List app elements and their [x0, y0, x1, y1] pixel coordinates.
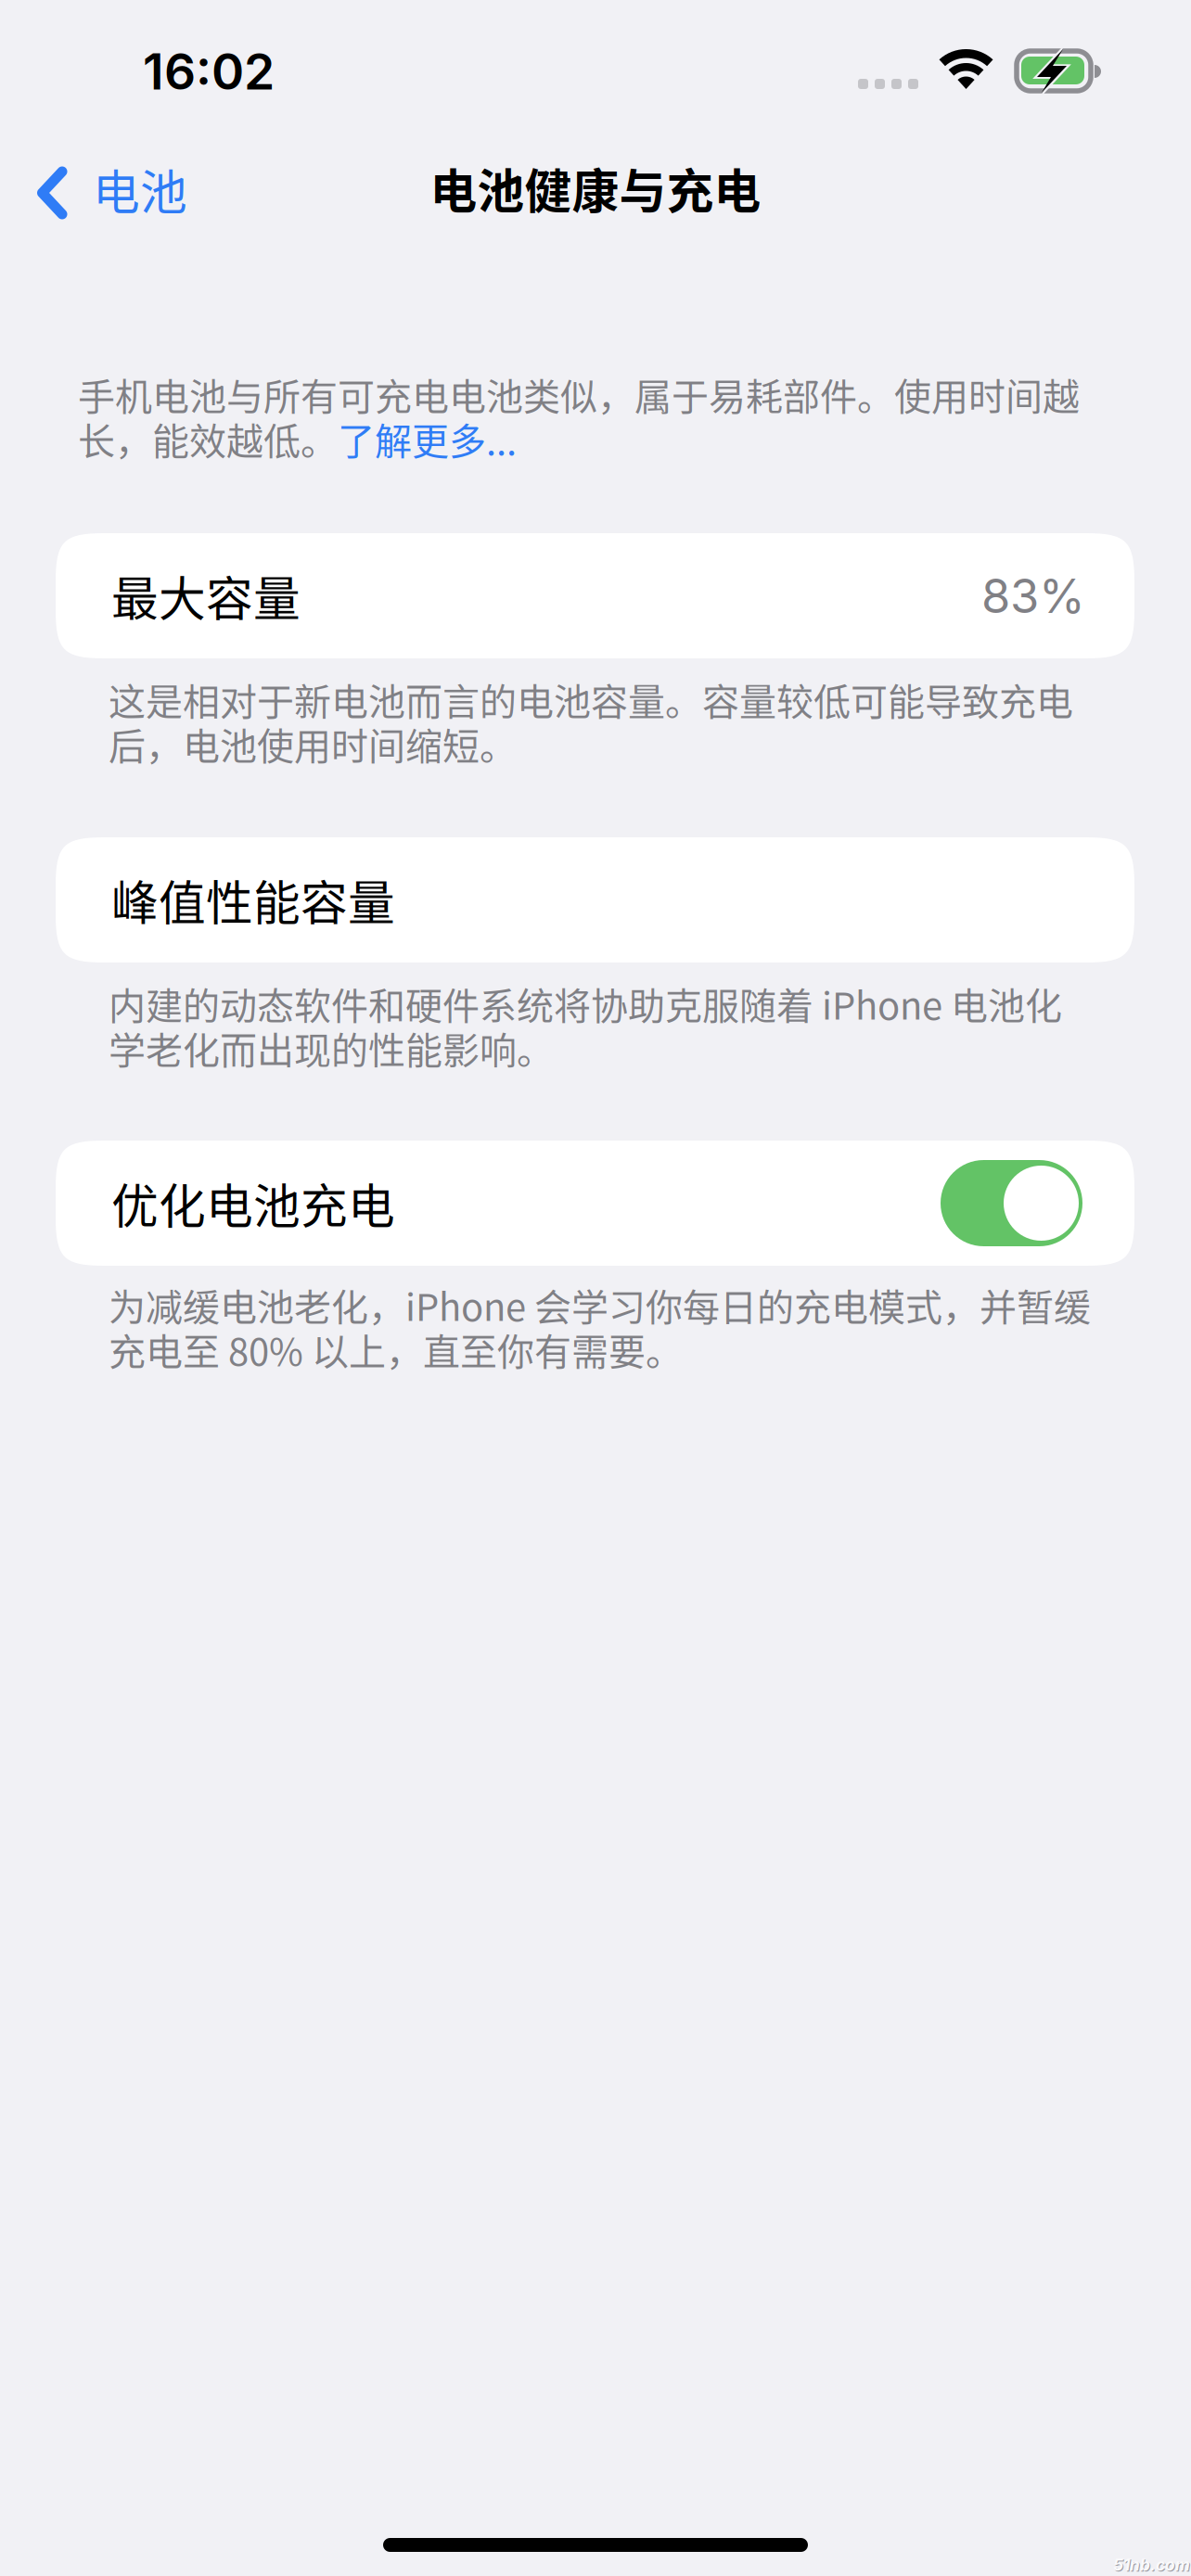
- staticText: 优化电池充电: [111, 1169, 395, 1237]
- button[interactable]: 电池: [0, 125, 232, 227]
- staticText: 长，能效越低。: [78, 412, 338, 465]
- staticText: 16:02: [143, 41, 275, 101]
- staticText: 为减缓电池老化，iPhone 会学习你每日的充电模式，并暂缓: [109, 1278, 1091, 1331]
- staticText: 最大容量: [111, 562, 301, 630]
- staticText: 电池健康与充电: [430, 154, 761, 222]
- button[interactable]: 了解更多...: [338, 412, 517, 465]
- staticText: 学老化而出现的性能影响。: [109, 1021, 554, 1075]
- staticText: 83%: [981, 567, 1085, 624]
- staticText: 内建的动态软件和硬件系统将协助克服随着 iPhone 电池化: [109, 976, 1062, 1030]
- staticText: 电池: [93, 155, 187, 223]
- staticText: 51nb.com: [1114, 2556, 1191, 2576]
- staticText: 了解更多...: [338, 412, 517, 465]
- staticText: 后，电池使用时间缩短。: [109, 717, 517, 770]
- staticText: 峰值性能容量: [111, 866, 395, 934]
- staticText: 充电至 80% 以上，直至你有需要。: [109, 1322, 683, 1376]
- staticText: 这是相对于新电池而言的电池容量。容量较低可能导致充电: [109, 672, 1073, 726]
- button[interactable]: 优化电池充电: [941, 1160, 1082, 1246]
- staticText: 51nb.com: [1113, 2555, 1190, 2575]
- staticText: 手机电池与所有可充电电池类似，属于易耗部件。使用时间越: [78, 367, 1080, 421]
